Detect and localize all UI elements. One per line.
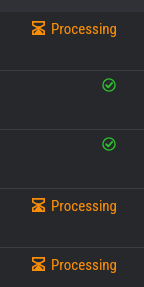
button[interactable]: Processing (0, 189, 144, 248)
button[interactable]: Processing (0, 12, 144, 71)
other: Processing (32, 198, 45, 212)
button[interactable]: Completed (0, 71, 144, 130)
other: Completed (102, 78, 116, 92)
staticText: Processing (51, 197, 118, 215)
other: Completed (102, 137, 116, 151)
other: Processing (32, 21, 45, 35)
staticText: Processing (51, 20, 118, 38)
button[interactable]: Processing (0, 248, 144, 287)
staticText: Processing (51, 256, 118, 274)
other: Processing (32, 257, 45, 271)
button[interactable]: Completed (0, 130, 144, 189)
